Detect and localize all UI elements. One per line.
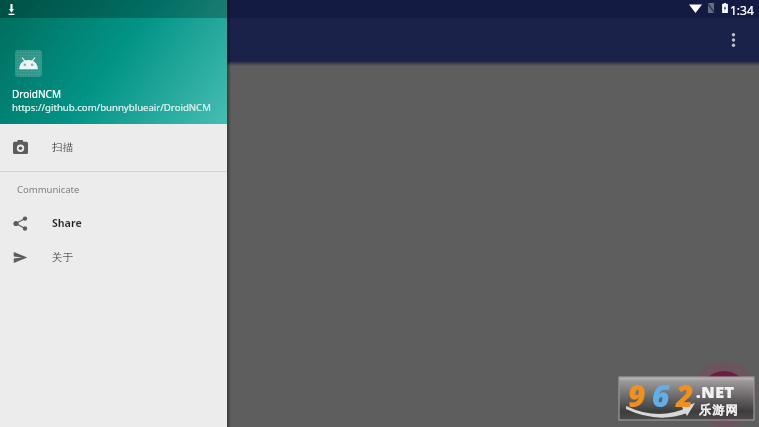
staticText: 2 [676, 375, 694, 416]
staticText: DroidNCM [12, 87, 61, 101]
staticText: 关于 [52, 251, 73, 264]
button[interactable]: 关于 [0, 240, 227, 274]
button[interactable]: Close navigation drawer [0, 61, 759, 427]
staticText: 9 [628, 375, 646, 416]
staticText: Share [52, 216, 82, 230]
staticText: https://github.com/bunnyblueair/DroidNCM [12, 101, 211, 114]
staticText: 1:34 [730, 2, 754, 18]
button[interactable]: More options [718, 25, 748, 55]
button[interactable]: DroidNCM [0, 0, 227, 124]
staticText: 扫描 [52, 141, 73, 154]
staticText: .NET [696, 381, 735, 403]
staticText: 乐游网 [699, 402, 739, 417]
staticText: Communicate [17, 183, 80, 196]
button[interactable]: Share [0, 206, 227, 240]
staticText: 6 [652, 375, 670, 416]
button[interactable]: 扫描 [0, 124, 227, 171]
